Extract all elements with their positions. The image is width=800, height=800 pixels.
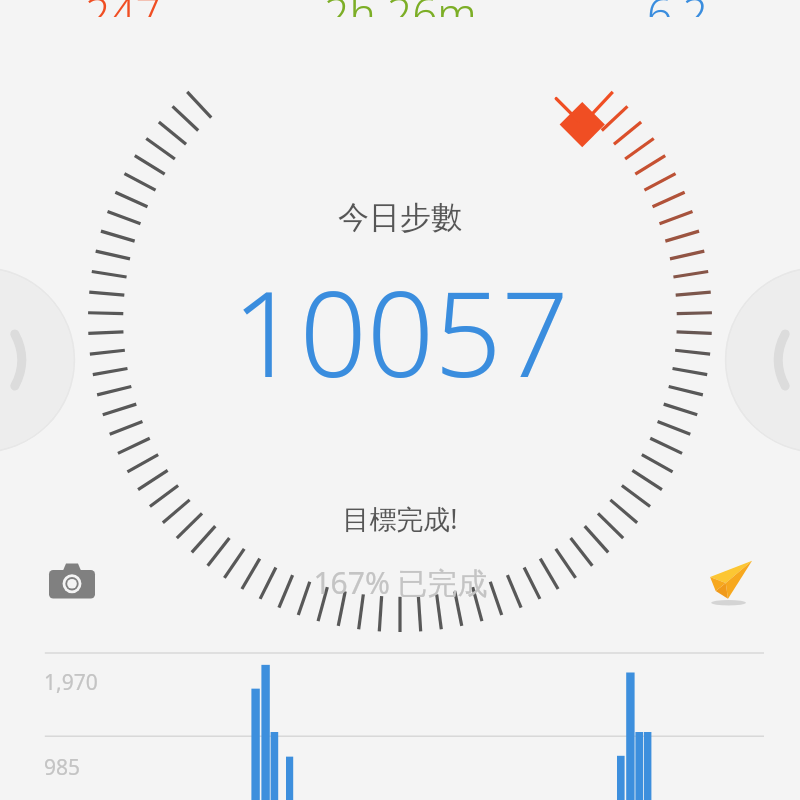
staticText: 10057 <box>232 251 569 412</box>
staticText: 2h 26m <box>324 0 477 17</box>
button[interactable]: 2h 26m <box>246 0 554 34</box>
staticText: 167% 已完成 <box>313 562 488 603</box>
button[interactable]: Today step goal dial <box>0 0 800 800</box>
button[interactable]: Camera <box>42 552 102 612</box>
button[interactable]: 6.2 <box>554 0 800 34</box>
staticText: 985 <box>44 753 81 782</box>
button[interactable]: 247 <box>0 0 246 34</box>
staticText: 今日步數 <box>338 198 462 237</box>
button[interactable]: Step history chart <box>0 630 800 800</box>
button[interactable]: Share <box>696 550 760 614</box>
staticText: 247 <box>85 0 161 17</box>
staticText: 目標完成! <box>0 500 800 537</box>
staticText: 1,970 <box>44 668 98 697</box>
staticText: 6.2 <box>647 0 708 17</box>
